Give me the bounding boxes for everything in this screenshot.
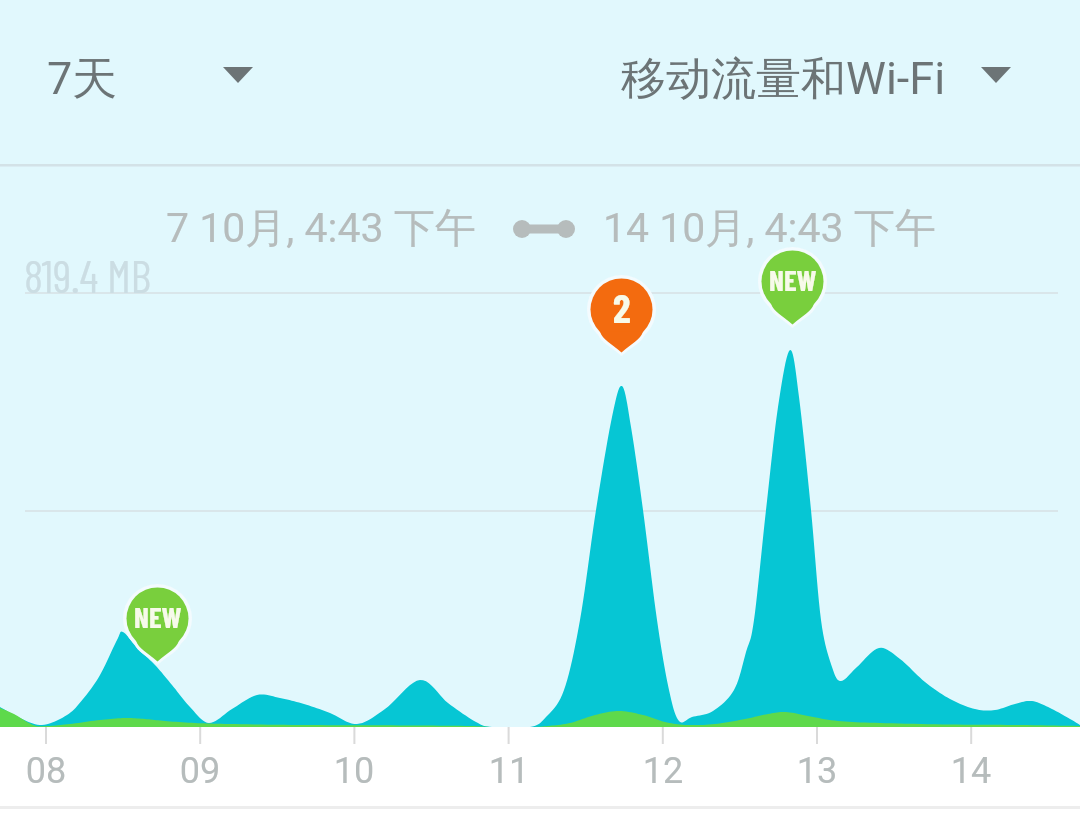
button[interactable]: NEW — [123, 584, 192, 665]
staticText: 11 — [464, 750, 554, 792]
staticText: 移动流量和Wi-Fi — [621, 51, 946, 108]
button[interactable]: 7天 — [23, 25, 277, 134]
staticText: 10 — [309, 750, 399, 792]
staticText: 819.4 MB — [24, 248, 151, 302]
button[interactable]: NEW — [758, 247, 827, 328]
staticText: 14 10月, 4:43 下午 — [603, 203, 936, 255]
button[interactable]: 2 — [587, 275, 656, 356]
staticText: 08 — [1, 750, 91, 792]
staticText: 7 10月, 4:43 下午 — [166, 203, 476, 255]
staticText: NEW — [134, 599, 182, 634]
staticText: 13 — [772, 750, 862, 792]
staticText: NEW — [769, 262, 817, 297]
staticText: 14 — [926, 750, 1016, 792]
staticText: 12 — [618, 750, 708, 792]
button[interactable]: 移动流量和Wi-Fi — [597, 25, 1035, 134]
staticText: 2 — [613, 283, 631, 331]
staticText: 7天 — [47, 51, 118, 108]
staticText: 09 — [155, 750, 245, 792]
